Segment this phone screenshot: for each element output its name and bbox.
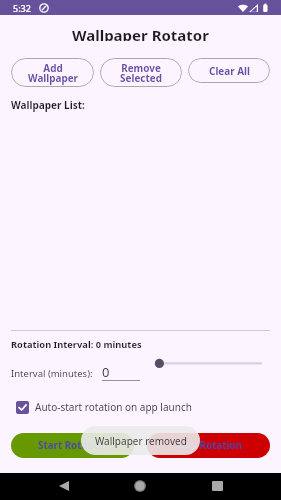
staticText: Interval (minutes): (11, 367, 93, 380)
button[interactable]: Clear All (188, 58, 270, 83)
staticText: Auto-start rotation on app launch (35, 400, 192, 414)
button[interactable]: Remove Selected (100, 58, 182, 87)
staticText: Wallpaper removed (95, 434, 187, 448)
button[interactable]: Start Rotation (11, 433, 134, 458)
staticText: Clear All (209, 64, 250, 77)
staticText: Rotation Interval: 0 minutes (11, 338, 142, 351)
button[interactable]: Rotation interval slider (150, 355, 270, 371)
button[interactable]: Recent apps (199, 473, 235, 500)
staticText: 0 (102, 363, 110, 381)
staticText: Add Wallpaper (28, 61, 78, 85)
staticText: Remove Selected (120, 61, 162, 85)
staticText: 5:32 (13, 2, 31, 14)
button[interactable]: Add Wallpaper (11, 58, 94, 87)
staticText: Stop Rotation (175, 439, 242, 452)
button[interactable]: Auto-start rotation on app launch (11, 398, 192, 416)
button[interactable]: Home (122, 473, 158, 500)
staticText: Start Rotation (38, 439, 108, 452)
staticText: Wallpaper Rotator (72, 25, 209, 41)
button[interactable]: Stop Rotation (147, 433, 270, 458)
button[interactable]: Back (46, 473, 82, 500)
staticText: Wallpaper List: (11, 98, 85, 112)
